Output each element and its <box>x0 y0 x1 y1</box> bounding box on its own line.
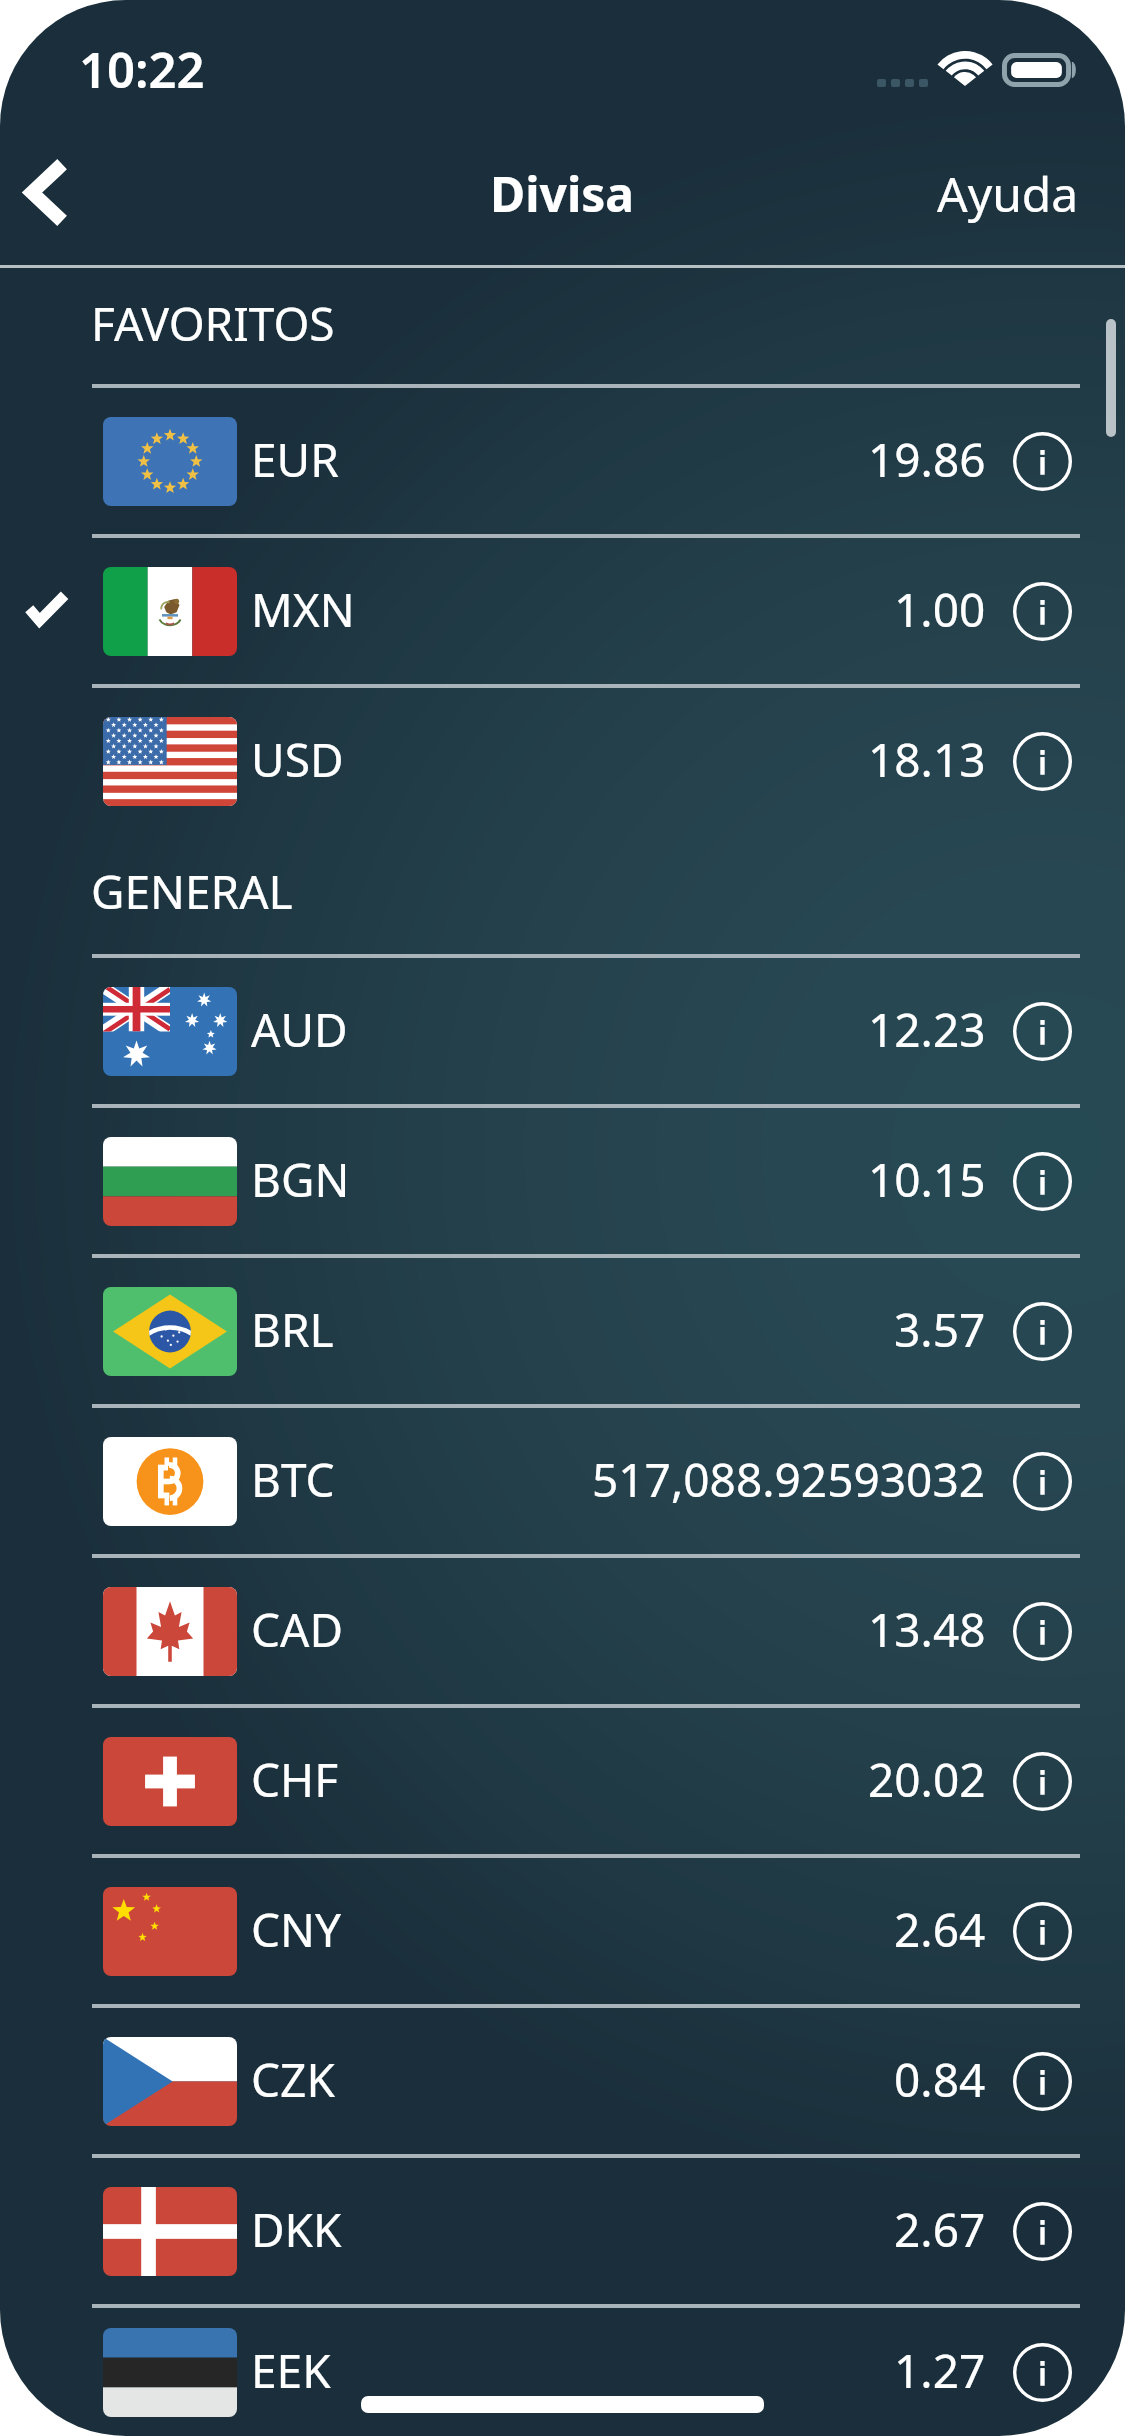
button[interactable]: Info CZK <box>997 2036 1087 2126</box>
staticText: Divisa <box>490 161 635 226</box>
staticText: CAD <box>251 1598 344 1661</box>
button[interactable]: BGN <box>0 1108 1125 1254</box>
staticText: BRL <box>251 1298 334 1361</box>
button[interactable]: Info DKK <box>997 2186 1087 2276</box>
staticText: CNY <box>251 1898 342 1961</box>
button[interactable]: USD <box>0 688 1125 834</box>
button[interactable]: BRL <box>0 1258 1125 1404</box>
button[interactable]: EEK <box>0 2308 1125 2436</box>
staticText: 2.67 <box>894 2198 986 2261</box>
staticText: CZK <box>251 2048 335 2111</box>
button[interactable]: Info EEK <box>997 2327 1087 2417</box>
button[interactable]: Info CNY <box>997 1886 1087 1976</box>
staticText: 12.23 <box>868 998 986 1061</box>
staticText: 517,088.92593032 <box>592 1448 986 1511</box>
staticText: 10:22 <box>79 36 205 103</box>
staticText: 13.48 <box>868 1598 986 1661</box>
button[interactable]: Info CHF <box>997 1736 1087 1826</box>
button[interactable]: DKK <box>0 2158 1125 2304</box>
staticText: 3.57 <box>894 1298 986 1361</box>
button[interactable]: MXN <box>0 538 1125 684</box>
staticText: EUR <box>251 428 339 491</box>
button[interactable]: CAD <box>0 1558 1125 1704</box>
staticText: CHF <box>251 1748 339 1811</box>
staticText: 19.86 <box>868 428 986 491</box>
button[interactable]: Info CAD <box>997 1586 1087 1676</box>
staticText: 1.00 <box>894 578 986 641</box>
button[interactable]: Info BRL <box>997 1286 1087 1376</box>
staticText: 0.84 <box>894 2048 986 2111</box>
button[interactable]: Info EUR <box>997 416 1087 506</box>
button[interactable]: Info BGN <box>997 1136 1087 1226</box>
button[interactable]: Info USD <box>997 716 1087 806</box>
staticText: DKK <box>251 2198 342 2261</box>
button[interactable]: CZK <box>0 2008 1125 2154</box>
staticText: FAVORITOS <box>91 292 335 355</box>
button[interactable]: Ayuda <box>887 126 1125 259</box>
button[interactable]: EUR <box>0 388 1125 534</box>
staticText: GENERAL <box>91 860 293 923</box>
staticText: EEK <box>251 2339 331 2402</box>
staticText: 1.27 <box>894 2339 986 2402</box>
staticText: 20.02 <box>868 1748 986 1811</box>
staticText: 2.64 <box>894 1898 986 1961</box>
staticText: 10.15 <box>868 1148 986 1211</box>
button[interactable]: Back <box>0 120 110 265</box>
button[interactable]: CHF <box>0 1708 1125 1854</box>
button[interactable]: CNY <box>0 1858 1125 2004</box>
staticText: AUD <box>251 998 348 1061</box>
button[interactable]: BTC <box>0 1408 1125 1554</box>
button[interactable]: AUD <box>0 958 1125 1104</box>
button[interactable]: Info MXN <box>997 566 1087 656</box>
staticText: 18.13 <box>868 728 986 791</box>
staticText: MXN <box>251 578 355 641</box>
staticText: USD <box>251 728 344 791</box>
staticText: BGN <box>251 1148 350 1211</box>
button[interactable]: Info AUD <box>997 986 1087 1076</box>
button[interactable]: Info BTC <box>997 1436 1087 1526</box>
staticText: BTC <box>251 1448 335 1511</box>
